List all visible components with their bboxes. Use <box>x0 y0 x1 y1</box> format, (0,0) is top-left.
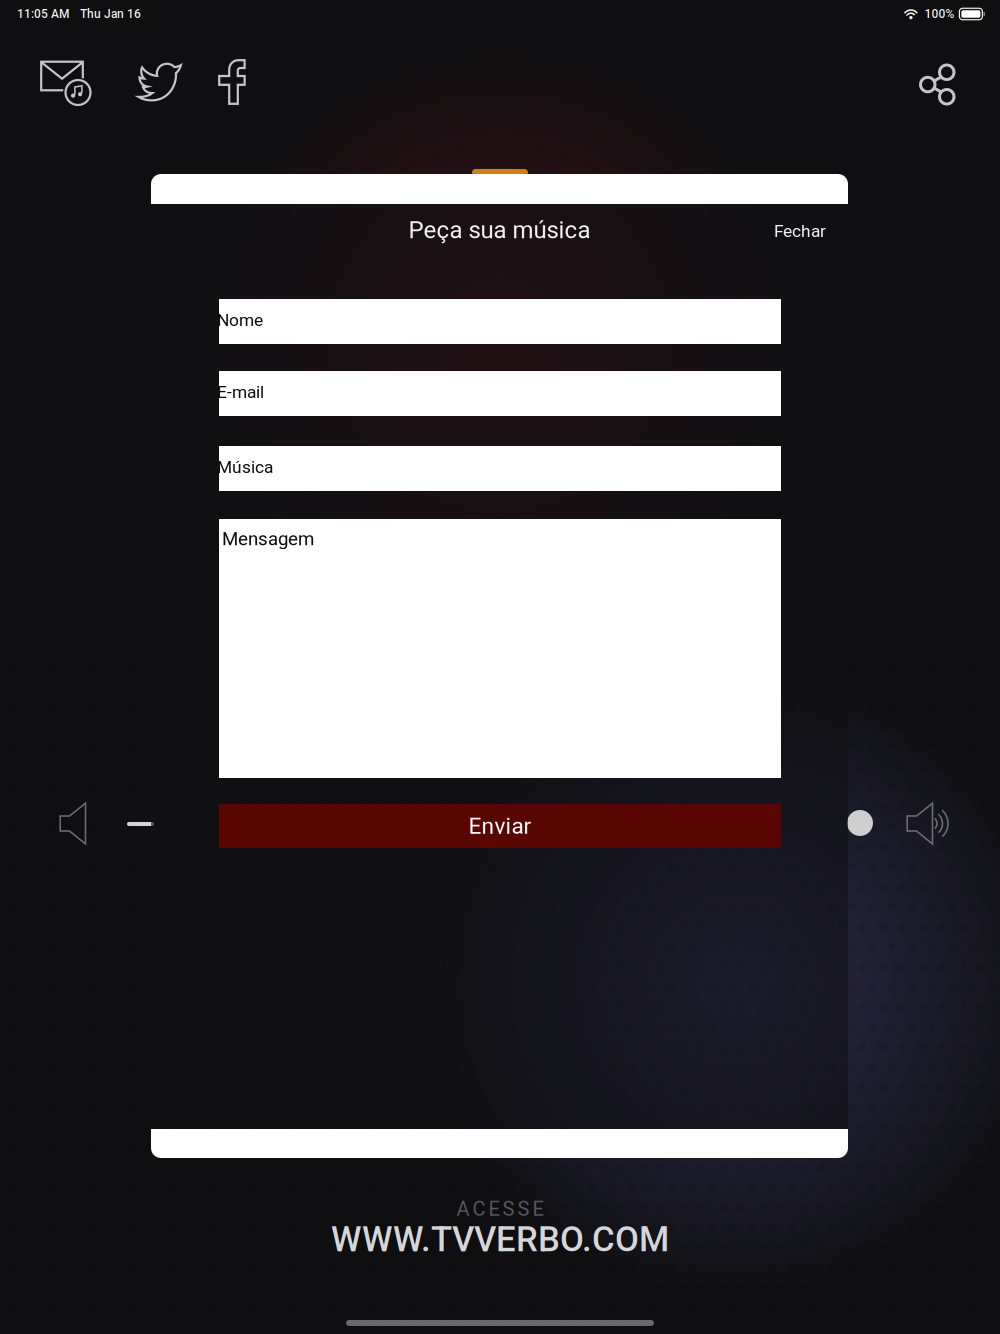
staticText: Música <box>217 457 273 477</box>
staticText: 11:05 AM <box>17 7 69 21</box>
button[interactable]: Fechar <box>750 211 850 251</box>
staticText: E-mail <box>217 382 264 402</box>
staticText: C <box>472 1197 485 1221</box>
staticText: Thu Jan 16 <box>80 7 141 21</box>
staticText: 100% <box>924 7 954 21</box>
button[interactable]: Share <box>916 64 954 105</box>
staticText: WWW.TVVERBO.COM <box>331 1219 669 1260</box>
staticText: Nome <box>217 310 263 330</box>
staticText: E <box>488 1197 499 1221</box>
staticText: S <box>502 1197 514 1221</box>
staticText: Mensagem <box>222 528 314 550</box>
button[interactable]: Música <box>219 446 781 491</box>
button[interactable]: Mensagem <box>219 519 781 778</box>
staticText: Peça sua música <box>408 216 590 244</box>
staticText: E <box>532 1197 543 1221</box>
staticText: Fechar <box>774 221 826 241</box>
button[interactable]: Twitter <box>131 61 182 103</box>
staticText: S <box>517 1197 529 1221</box>
button[interactable]: Nome <box>219 299 781 344</box>
button[interactable]: Enviar <box>219 804 781 848</box>
button[interactable]: E-mail <box>36 53 88 99</box>
staticText: Enviar <box>468 813 531 839</box>
button[interactable]: Facebook <box>218 59 246 105</box>
button[interactable]: E-mail <box>219 371 781 416</box>
staticText: A <box>456 1197 469 1221</box>
